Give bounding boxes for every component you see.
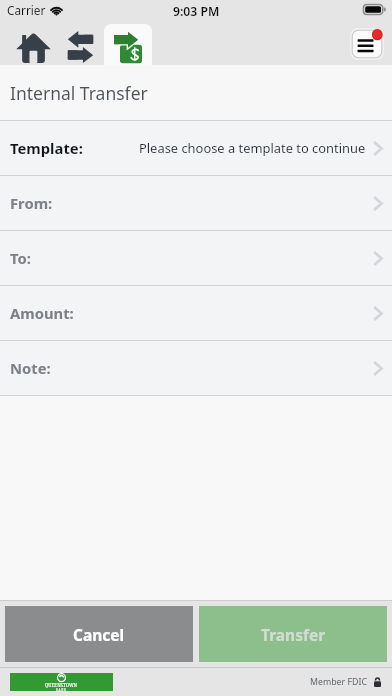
- staticText: B A N K: [56, 688, 67, 691]
- button[interactable]: Queenstown Bank: [10, 673, 113, 691]
- staticText: From:: [10, 193, 53, 213]
- button[interactable]: From:: [0, 176, 392, 230]
- button[interactable]: Amount:: [0, 286, 392, 340]
- button[interactable]: Transfers: [67, 31, 94, 63]
- button[interactable]: To:: [0, 231, 392, 285]
- staticText: Amount:: [10, 303, 74, 323]
- button[interactable]: Menu: [349, 27, 385, 61]
- button[interactable]: Internal Transfer: [104, 24, 152, 66]
- button[interactable]: Home: [16, 32, 51, 63]
- staticText: 9:03 PM: [173, 3, 220, 20]
- staticText: QUEENSTOWN: [45, 682, 78, 688]
- staticText: Note:: [10, 358, 51, 378]
- staticText: Please choose a template to continue: [139, 139, 366, 157]
- staticText: Transfer: [261, 624, 326, 645]
- button[interactable]: Note:: [0, 341, 392, 395]
- staticText: Internal Transfer: [10, 81, 148, 105]
- staticText: Carrier: [7, 2, 46, 18]
- button[interactable]: Template:: [0, 121, 392, 175]
- staticText: Template:: [10, 138, 83, 158]
- staticText: Cancel: [73, 624, 125, 645]
- button[interactable]: Cancel: [5, 606, 193, 662]
- staticText: Member FDIC: [310, 676, 367, 688]
- button[interactable]: Transfer: [199, 606, 387, 662]
- staticText: To:: [10, 248, 31, 268]
